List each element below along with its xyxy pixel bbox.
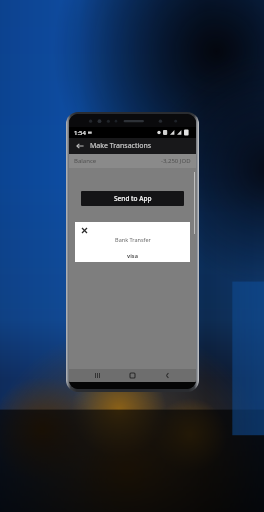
staticText: Balance [74, 157, 97, 165]
button[interactable]: Close [79, 225, 89, 235]
button[interactable]: Send to App [81, 191, 184, 206]
button[interactable]: Bank Transfer [115, 236, 151, 243]
staticText: -3,250 JOD [161, 157, 191, 165]
button[interactable]: Home [126, 369, 139, 382]
button[interactable]: Balance [74, 154, 191, 168]
button[interactable]: Back [74, 140, 86, 152]
staticText: Make Transactions [90, 141, 152, 151]
staticText: 1:54 [74, 129, 86, 137]
button[interactable]: visa [127, 252, 138, 259]
staticText: Send to App [114, 194, 152, 203]
button[interactable]: Back [161, 369, 174, 382]
button[interactable]: Recent apps [91, 369, 104, 382]
